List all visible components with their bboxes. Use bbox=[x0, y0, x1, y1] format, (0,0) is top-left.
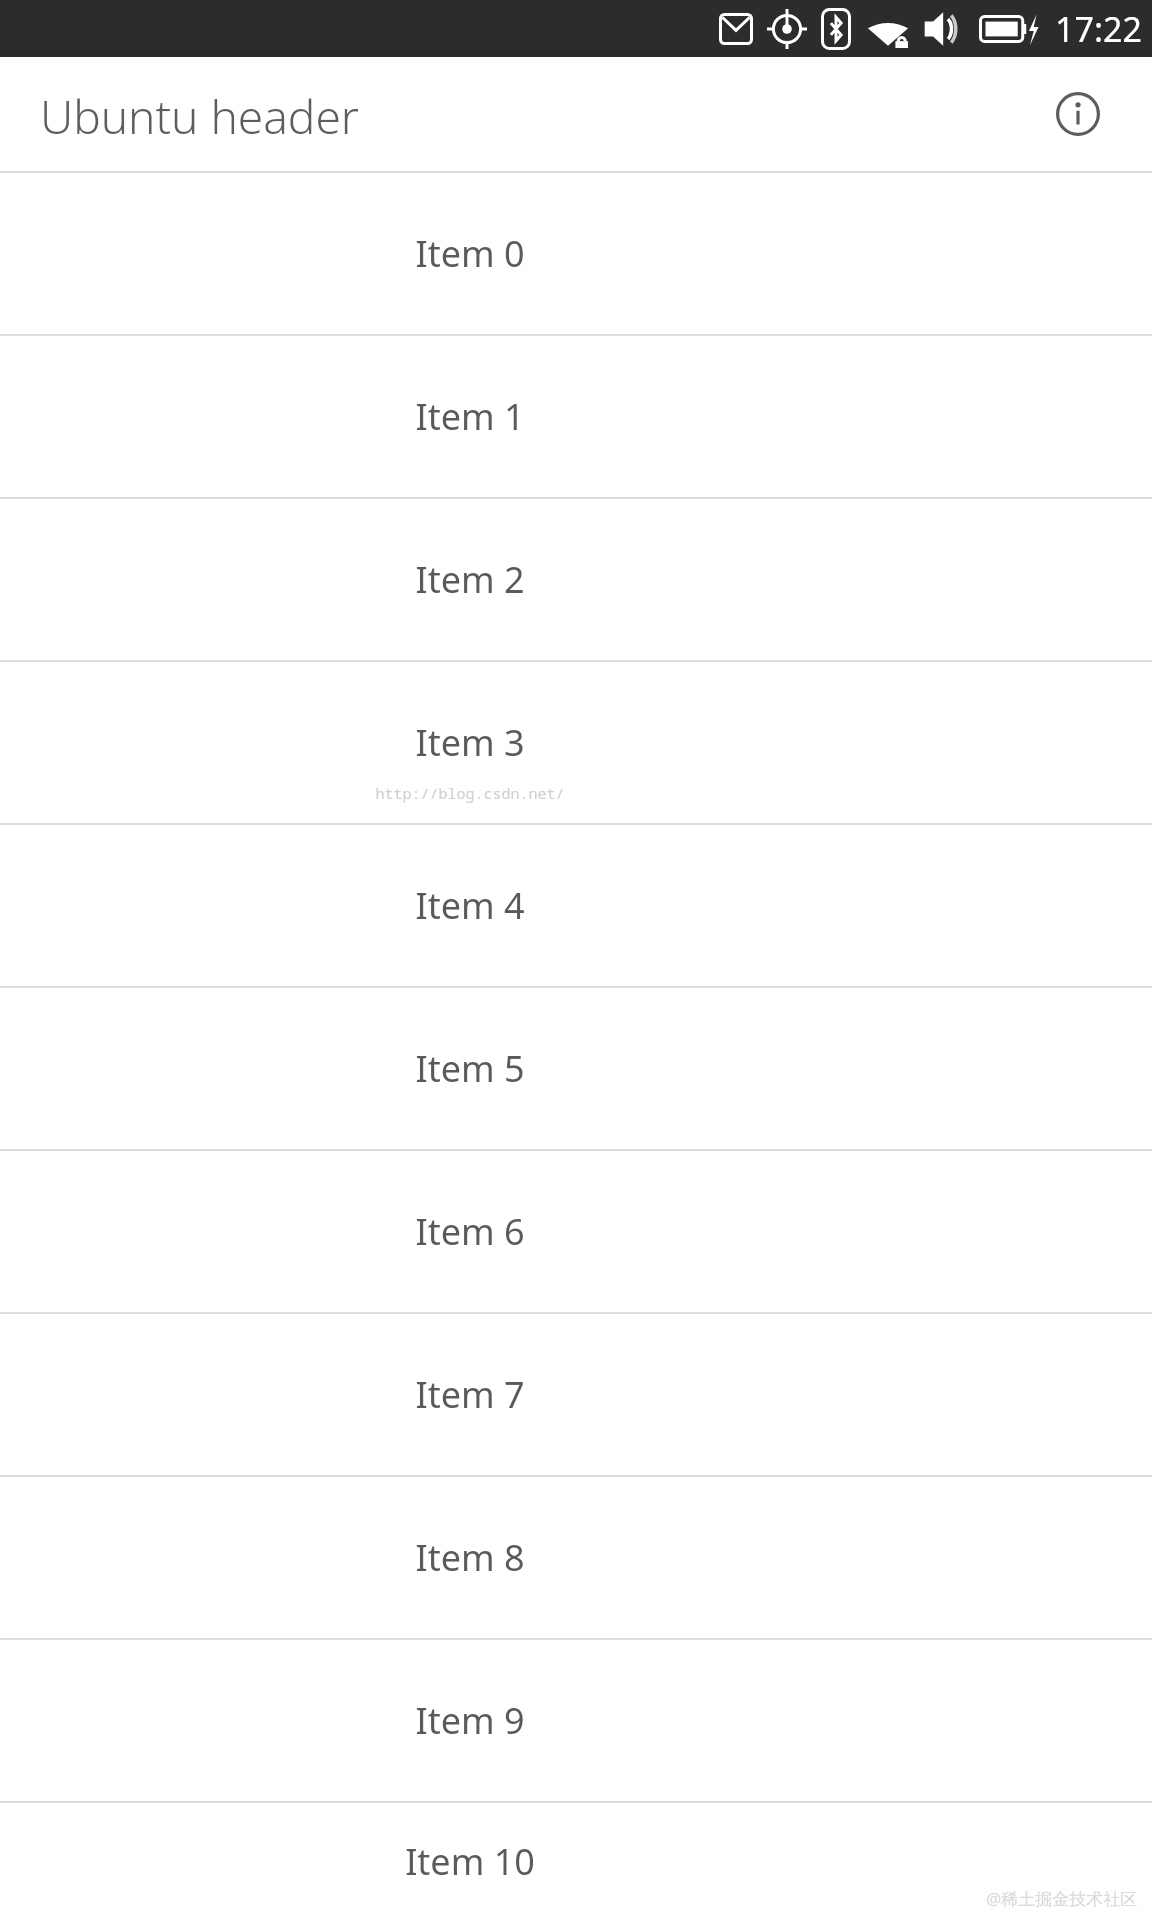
button[interactable]: Item 5 bbox=[0, 988, 1152, 1149]
button[interactable]: Item 9 bbox=[0, 1640, 1152, 1801]
staticText: Item 0 bbox=[0, 229, 940, 278]
button[interactable]: Info bbox=[1049, 85, 1107, 143]
staticText: http://blog.csdn.net/ bbox=[0, 783, 940, 803]
button[interactable]: Item 8 bbox=[0, 1477, 1152, 1638]
staticText: Ubuntu header bbox=[40, 85, 359, 148]
staticText: Item 8 bbox=[0, 1533, 940, 1582]
staticText: Item 9 bbox=[0, 1696, 940, 1745]
staticText: Item 2 bbox=[0, 555, 940, 604]
button[interactable]: Item 10 bbox=[0, 1803, 1152, 1920]
button[interactable]: Item 2 bbox=[0, 499, 1152, 660]
staticText: Item 6 bbox=[0, 1207, 940, 1256]
staticText: Item 1 bbox=[0, 392, 940, 441]
button[interactable]: Item 0 bbox=[0, 173, 1152, 334]
button[interactable]: Item 1 bbox=[0, 336, 1152, 497]
button[interactable]: Item 6 bbox=[0, 1151, 1152, 1312]
button[interactable]: Item 3 bbox=[0, 662, 1152, 823]
staticText: @稀土掘金技术社区 bbox=[986, 1887, 1138, 1910]
button[interactable]: Item 7 bbox=[0, 1314, 1152, 1475]
staticText: Item 4 bbox=[0, 881, 940, 930]
staticText: Item 10 bbox=[0, 1837, 940, 1886]
button[interactable]: Item 4 bbox=[0, 825, 1152, 986]
staticText: Item 5 bbox=[0, 1044, 940, 1093]
staticText: Item 3 bbox=[0, 718, 940, 767]
staticText: 17:22 bbox=[1055, 6, 1142, 52]
staticText: Item 7 bbox=[0, 1370, 940, 1419]
